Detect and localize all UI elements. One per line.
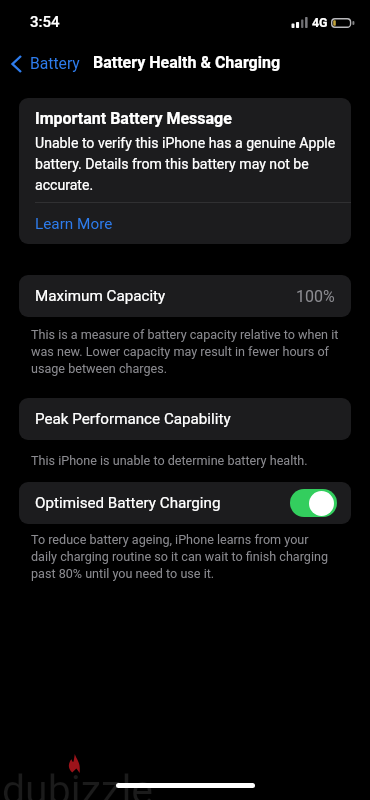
staticText: Unable to verify this iPhone has a genui… <box>35 135 336 193</box>
staticText: Important Battery Message <box>35 109 232 128</box>
staticText: Battery Health & Charging <box>93 53 281 72</box>
staticText: Optimised Battery Charging <box>35 494 221 512</box>
button[interactable]: Maximum Capacity <box>19 275 351 317</box>
staticText: 100% <box>296 287 335 306</box>
staticText: To reduce battery ageing, iPhone learns … <box>31 532 360 581</box>
staticText: Maximum Capacity <box>35 287 166 305</box>
staticText: This is a measure of battery capacity re… <box>31 327 360 376</box>
staticText: 4G <box>312 15 328 30</box>
button[interactable]: Optimised Battery Charging, on <box>290 489 337 517</box>
staticText: Learn More <box>35 215 113 233</box>
staticText: 3:54 <box>30 13 60 31</box>
staticText: dubizzle <box>2 766 154 800</box>
staticText: Peak Performance Capability <box>35 410 231 428</box>
button[interactable]: Peak Performance Capability <box>19 398 351 440</box>
button[interactable]: Learn More <box>19 203 351 244</box>
staticText: Battery <box>30 54 80 72</box>
button[interactable]: Back <box>0 55 86 73</box>
other: Back <box>11 55 22 73</box>
staticText: This iPhone is unable to determine batte… <box>31 453 360 468</box>
